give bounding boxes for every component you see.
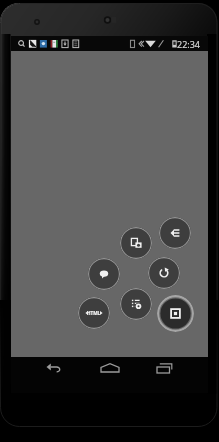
button[interactable]: Refresh xyxy=(148,257,180,289)
staticText: 22:34 xyxy=(177,38,201,50)
button[interactable]: Outdent xyxy=(159,217,191,249)
button[interactable]: Back xyxy=(32,357,76,393)
button[interactable]: HTML source xyxy=(78,297,110,329)
button[interactable]: Comment xyxy=(88,258,120,290)
button[interactable]: Recent apps xyxy=(142,357,186,393)
button[interactable]: Screenshot xyxy=(120,227,152,259)
button[interactable]: Home xyxy=(88,357,132,393)
button[interactable]: Close menu xyxy=(157,295,194,332)
button[interactable]: Tasks xyxy=(120,288,152,320)
staticText: HTML xyxy=(87,310,101,316)
